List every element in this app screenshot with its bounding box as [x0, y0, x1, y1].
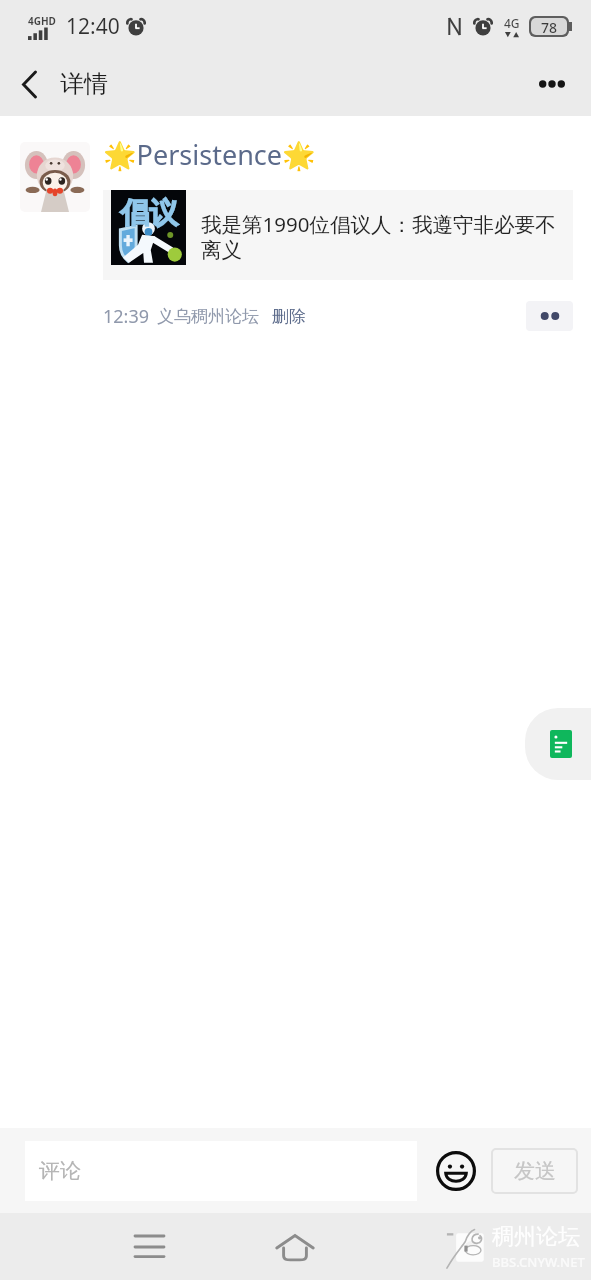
staticText: 4GHD — [28, 14, 56, 28]
button[interactable]: Recent apps — [113, 1217, 185, 1277]
button[interactable]: 倡议 — [103, 190, 573, 280]
staticText: 12:39 — [103, 304, 150, 329]
staticText: 倡议 — [120, 195, 178, 232]
button[interactable]: Emoji — [433, 1148, 479, 1194]
staticText: 发送 — [514, 1158, 556, 1184]
staticText: 稠州论坛 — [492, 1223, 580, 1251]
button[interactable]: Home — [259, 1217, 331, 1277]
staticText: 12:40 — [66, 12, 120, 41]
button[interactable]: Quick post — [525, 708, 591, 780]
button[interactable]: Avatar — [20, 142, 90, 212]
staticText: BBS.CNYW.NET — [492, 1253, 585, 1271]
staticText: 删除 — [272, 306, 306, 327]
staticText: 详情 — [60, 69, 108, 99]
staticText: 4G — [504, 15, 520, 31]
button[interactable]: More options — [513, 52, 591, 116]
staticText: 78 — [541, 18, 558, 35]
button[interactable]: 评论 — [25, 1141, 417, 1201]
staticText: 评论 — [39, 1158, 81, 1184]
staticText: 义乌稠州论坛 — [157, 306, 259, 327]
staticText: 我是第1990位倡议人：我遵守非必要不离义 — [201, 210, 561, 263]
button[interactable]: 发送 — [491, 1148, 578, 1194]
staticText: 🌟Persistence🌟 — [103, 136, 316, 173]
button[interactable]: Actions — [526, 301, 573, 331]
button[interactable]: Back — [0, 52, 58, 116]
